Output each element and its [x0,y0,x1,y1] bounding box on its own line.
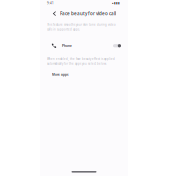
button[interactable]: Phone [40,42,128,49]
staticText: ▴ ▮▮▮ [112,1,120,5]
staticText: Phone [62,44,72,48]
staticText: automatically for the apps you select be… [47,62,107,65]
staticText: When enabled, the face beauty effect is … [47,57,115,61]
staticText: More apps [52,72,69,77]
button[interactable]: More apps [40,72,69,77]
staticText: 9:41 [47,1,54,5]
staticText: This feature smooths your skin tone duri… [47,23,116,27]
staticText: Face beauty for video call [60,10,116,17]
staticText: calls in supported apps. [47,28,80,31]
button[interactable]: Back [51,10,60,17]
